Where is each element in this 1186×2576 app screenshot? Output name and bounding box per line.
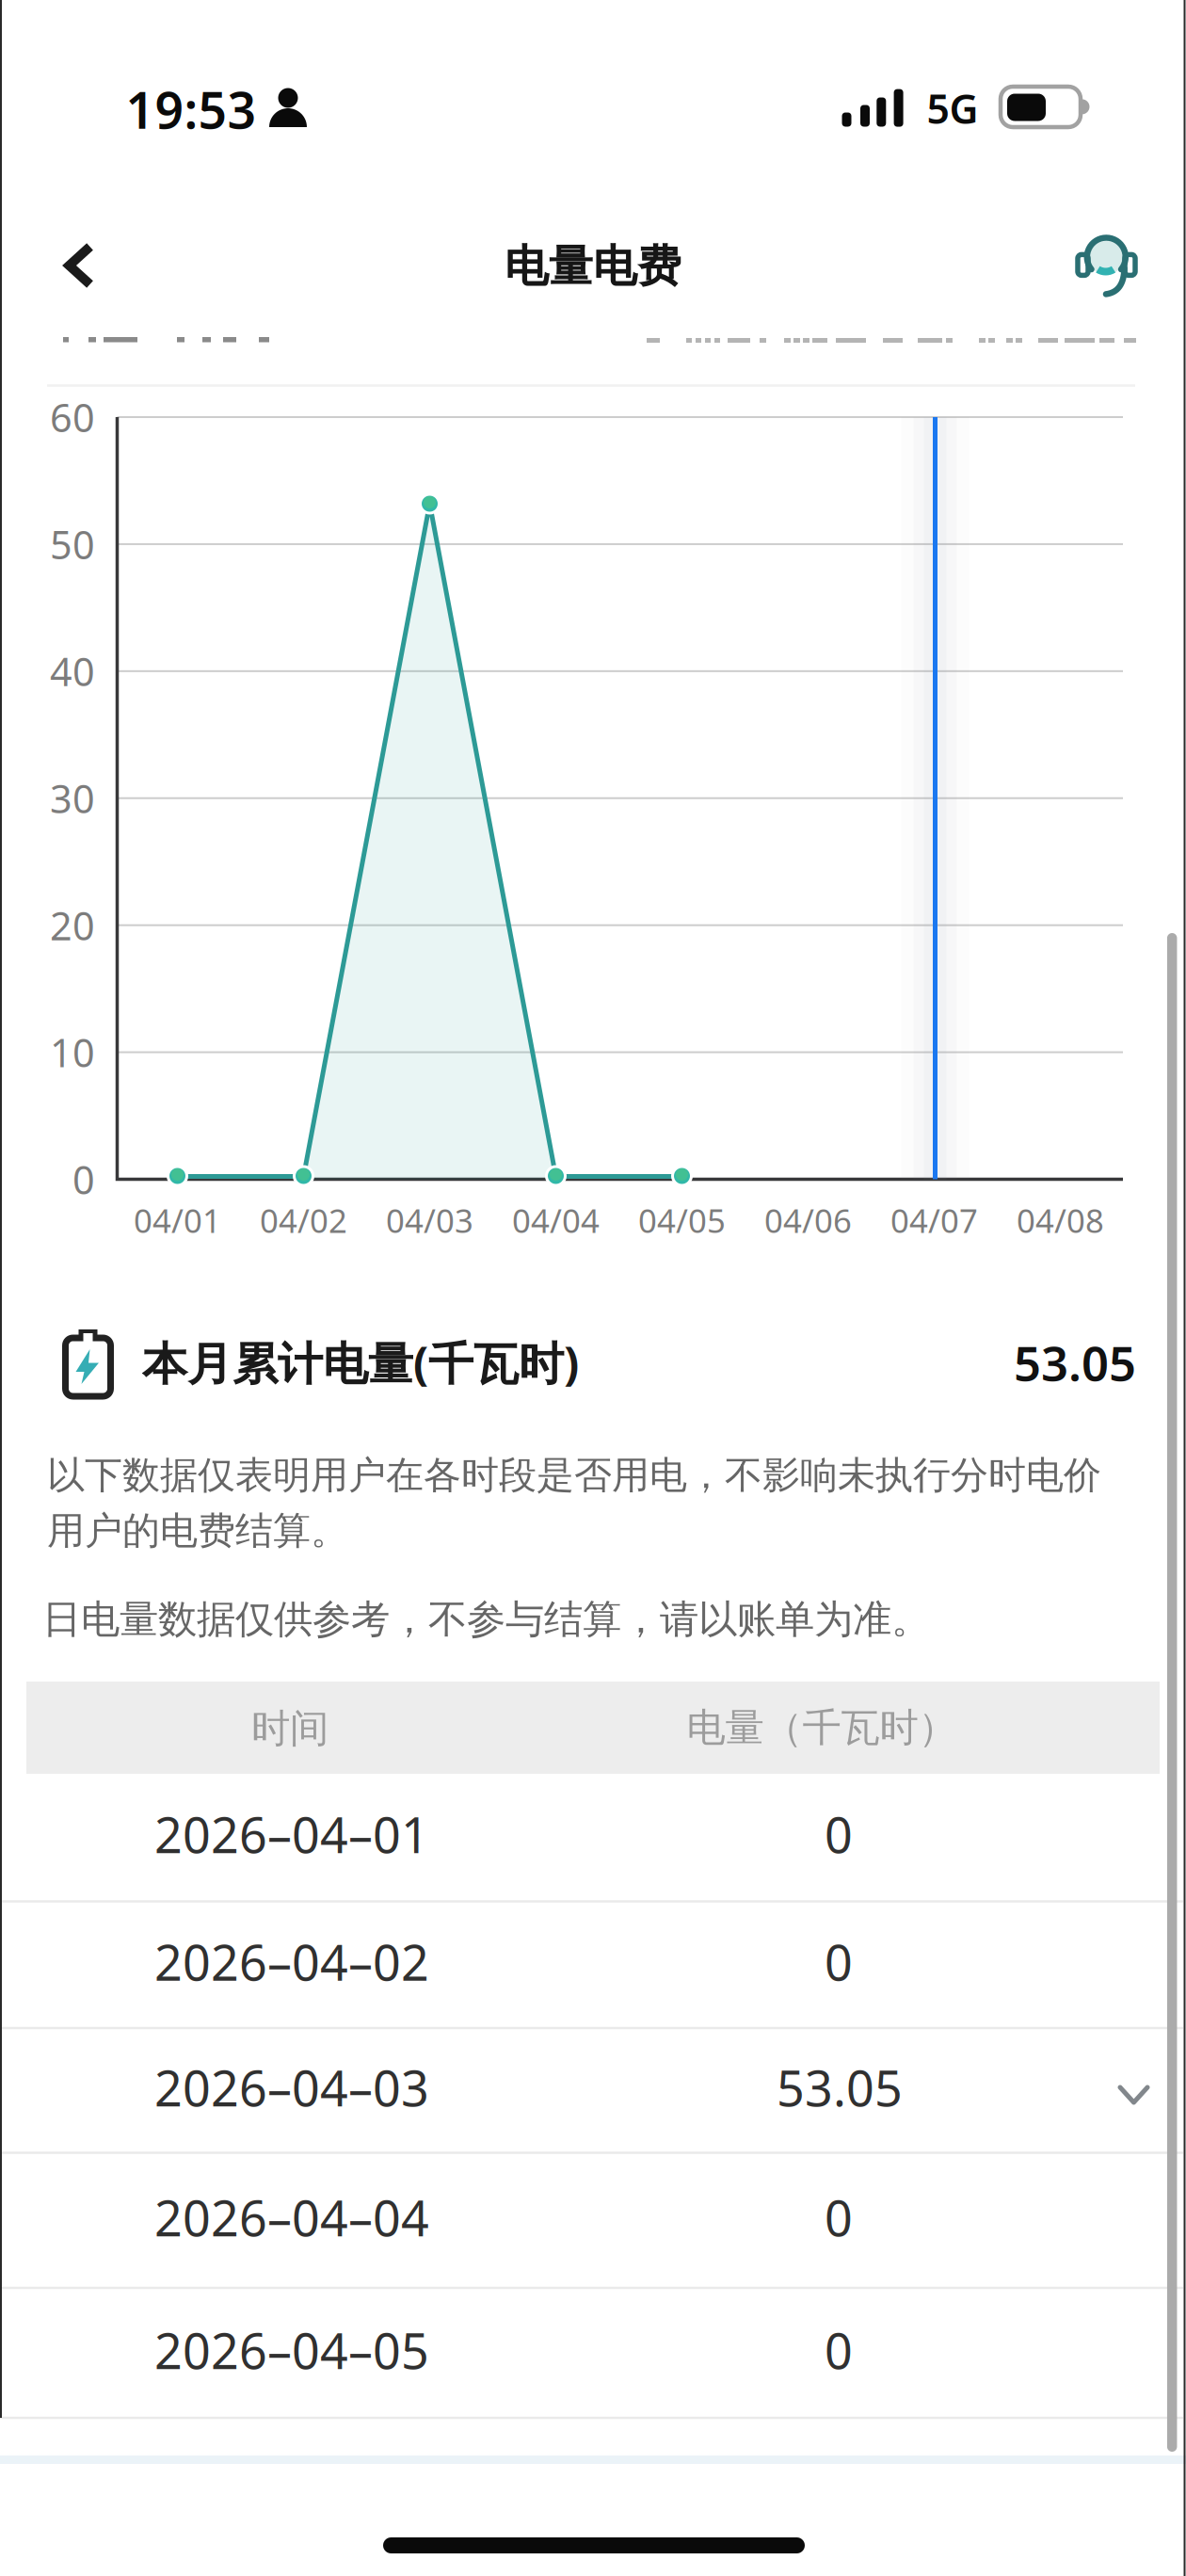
staticText: 53.05 (777, 2055, 903, 2120)
staticText: 04/04 (512, 1199, 600, 1242)
staticText: 以下数据仅表明用户在各时段是否用电，不影响未执行分时电价 (47, 1452, 1101, 1498)
staticText: 2026–04–03 (154, 2055, 429, 2120)
staticText: 0 (825, 1802, 853, 1867)
staticText: 19:53 (126, 76, 256, 143)
staticText: 时间 (251, 1705, 329, 1753)
staticText: 电量电费 (505, 239, 681, 293)
button[interactable]: Back (51, 237, 108, 294)
staticText: 10 (50, 1026, 95, 1078)
staticText: 20 (50, 899, 95, 951)
button[interactable]: 2026–04–03 (0, 2028, 1186, 2152)
staticText: 53.05 (1014, 1331, 1136, 1394)
staticText: 本月累计电量(千瓦时) (142, 1332, 579, 1392)
staticText: 0 (825, 2318, 853, 2383)
staticText: 04/06 (764, 1199, 852, 1242)
staticText: 60 (50, 391, 95, 443)
staticText: 0 (825, 1929, 853, 1994)
staticText: 50 (50, 518, 95, 570)
staticText: 2026–04–04 (154, 2185, 429, 2250)
staticText: 04/08 (1017, 1199, 1104, 1242)
staticText: 40 (50, 645, 95, 697)
staticText: 5G (927, 82, 978, 135)
staticText: 0 (825, 2185, 853, 2250)
staticText: 用户的电费结算。 (47, 1508, 348, 1554)
staticText: 0 (72, 1153, 95, 1205)
staticText: 电量（千瓦时） (687, 1704, 957, 1752)
staticText: 2026–04–02 (154, 1929, 429, 1994)
staticText: 2026–04–05 (154, 2318, 429, 2383)
staticText: 30 (50, 772, 95, 824)
button[interactable]: Customer service (1068, 228, 1144, 303)
staticText: 04/03 (386, 1199, 473, 1242)
staticText: 04/05 (638, 1199, 726, 1242)
staticText: 2026–04–01 (154, 1802, 429, 1867)
staticText: 04/02 (260, 1199, 347, 1242)
staticText: 04/01 (134, 1199, 221, 1242)
staticText: 04/07 (890, 1199, 978, 1242)
staticText: 日电量数据仅供参考，不参与结算，请以账单为准。 (42, 1596, 930, 1643)
